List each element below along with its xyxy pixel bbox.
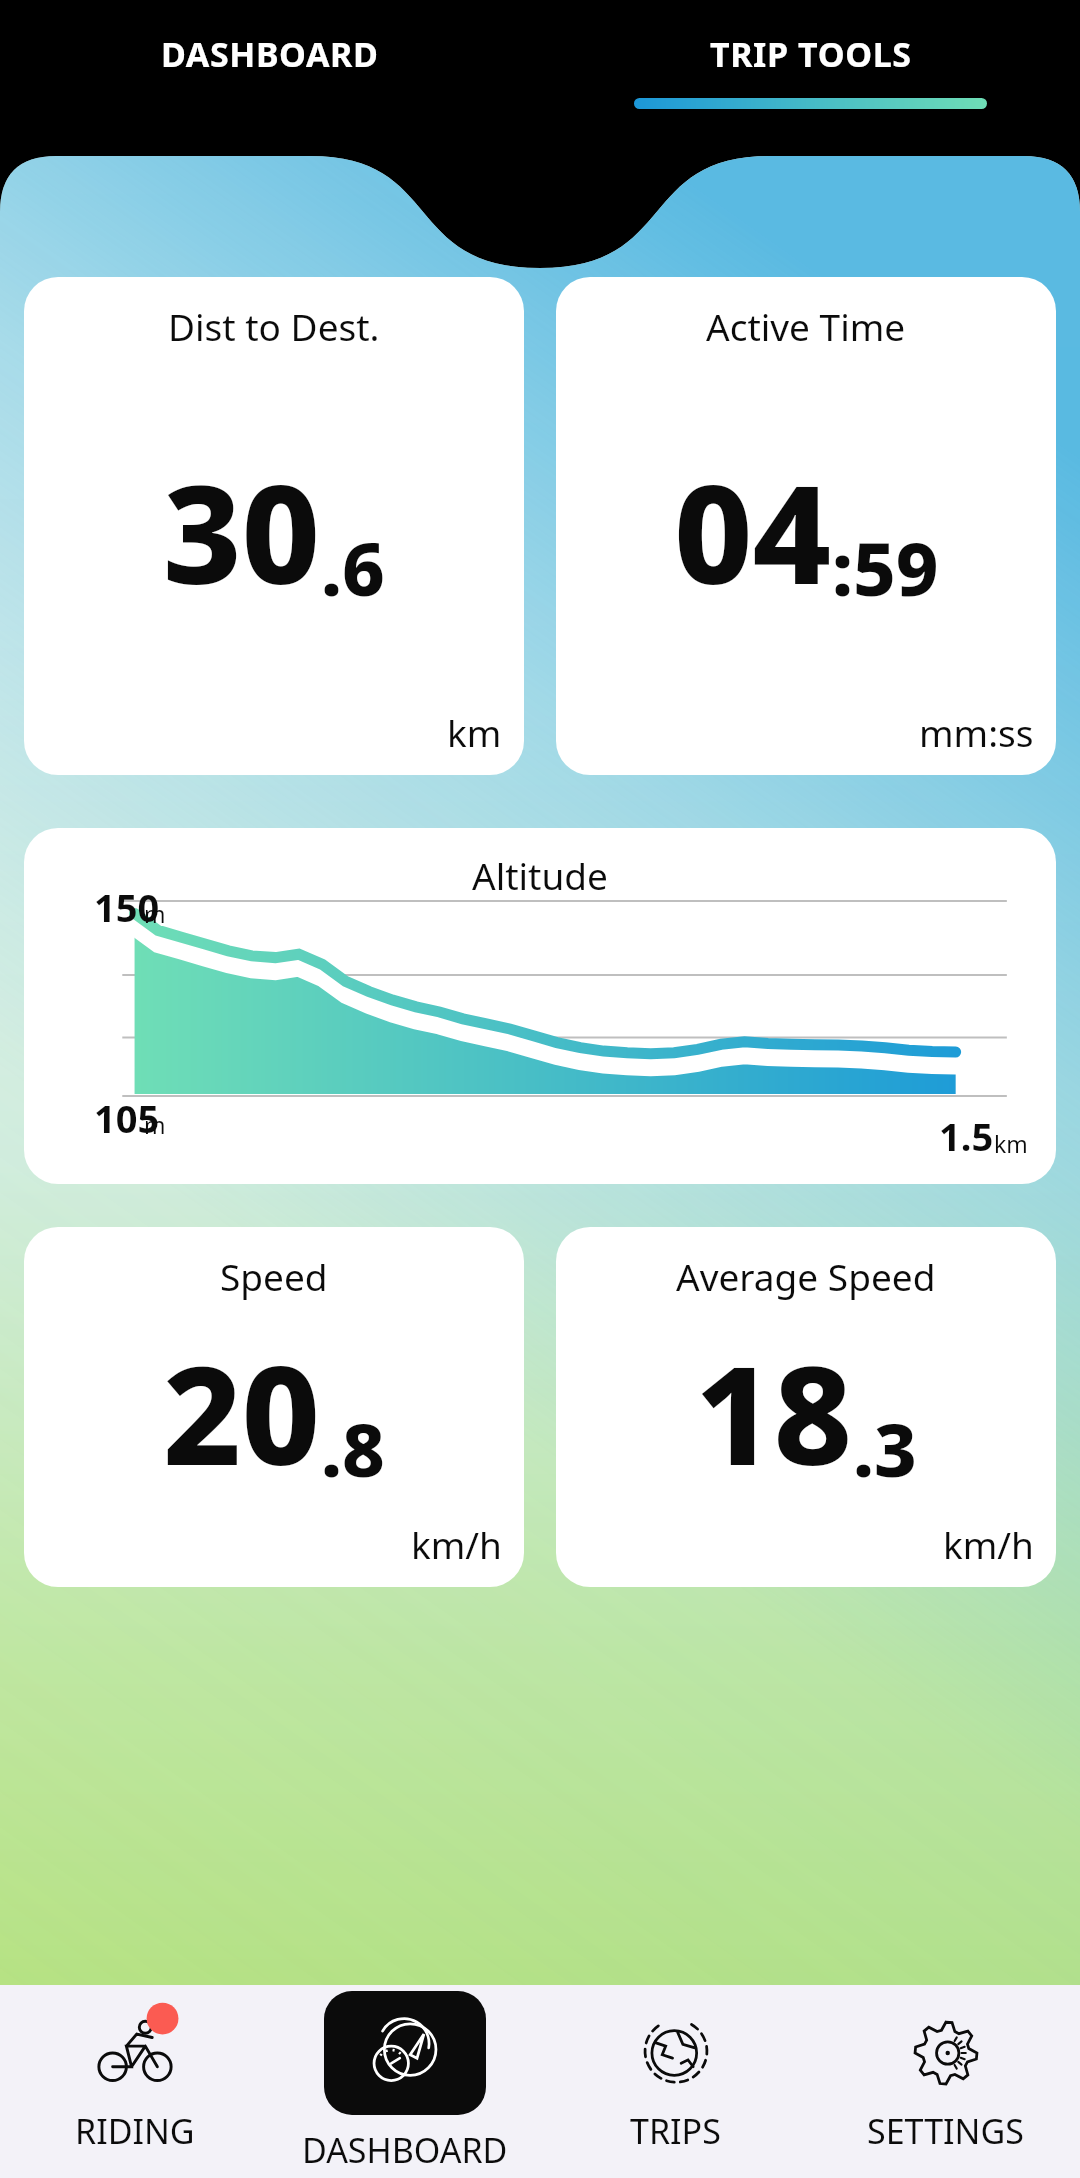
staticText: Speed [220,1251,328,1301]
button[interactable]: TRIP TOOLS [540,0,1080,156]
staticText: :59 [832,517,939,618]
button[interactable]: Speed [24,1227,524,1587]
staticText: m [144,898,166,929]
staticText: Altitude [472,850,608,900]
staticText: DASHBOARD [161,31,379,77]
staticText: km/h [411,1519,502,1569]
staticText: Active Time [706,301,906,351]
staticText: .8 [321,1398,385,1499]
button[interactable]: SETTINGS [810,1985,1080,2178]
staticText: 04 [674,439,832,624]
staticText: km [447,707,502,757]
staticText: RIDING [75,2108,195,2154]
staticText: SETTINGS [867,2108,1024,2154]
staticText: 150 [94,881,160,933]
staticText: 18 [695,1320,853,1505]
staticText: Dist to Dest. [168,301,380,351]
button[interactable]: Average Speed [556,1227,1056,1587]
staticText: .6 [321,517,385,618]
button[interactable]: Active Time [556,277,1056,775]
staticText: DASHBOARD [302,2127,508,2173]
staticText: 1.5 [939,1110,994,1162]
staticText: .3 [853,1398,917,1499]
staticText: km/h [943,1519,1034,1569]
staticText: km [994,1128,1028,1159]
button[interactable]: Altitude [24,828,1056,1184]
button[interactable]: DASHBOARD [0,0,540,156]
staticText: mm:ss [919,707,1034,757]
button[interactable]: DASHBOARD [270,1985,540,2178]
staticText: 20 [163,1320,321,1505]
button[interactable]: Dist to Dest. [24,277,524,775]
staticText: Average Speed [676,1251,936,1301]
staticText: 30 [163,439,321,624]
staticText: TRIP TOOLS [710,31,912,77]
button[interactable]: RIDING [0,1985,270,2178]
staticText: 105 [94,1092,160,1144]
button[interactable]: TRIPS [540,1985,810,2178]
staticText: m [144,1109,166,1140]
staticText: TRIPS [630,2108,721,2154]
